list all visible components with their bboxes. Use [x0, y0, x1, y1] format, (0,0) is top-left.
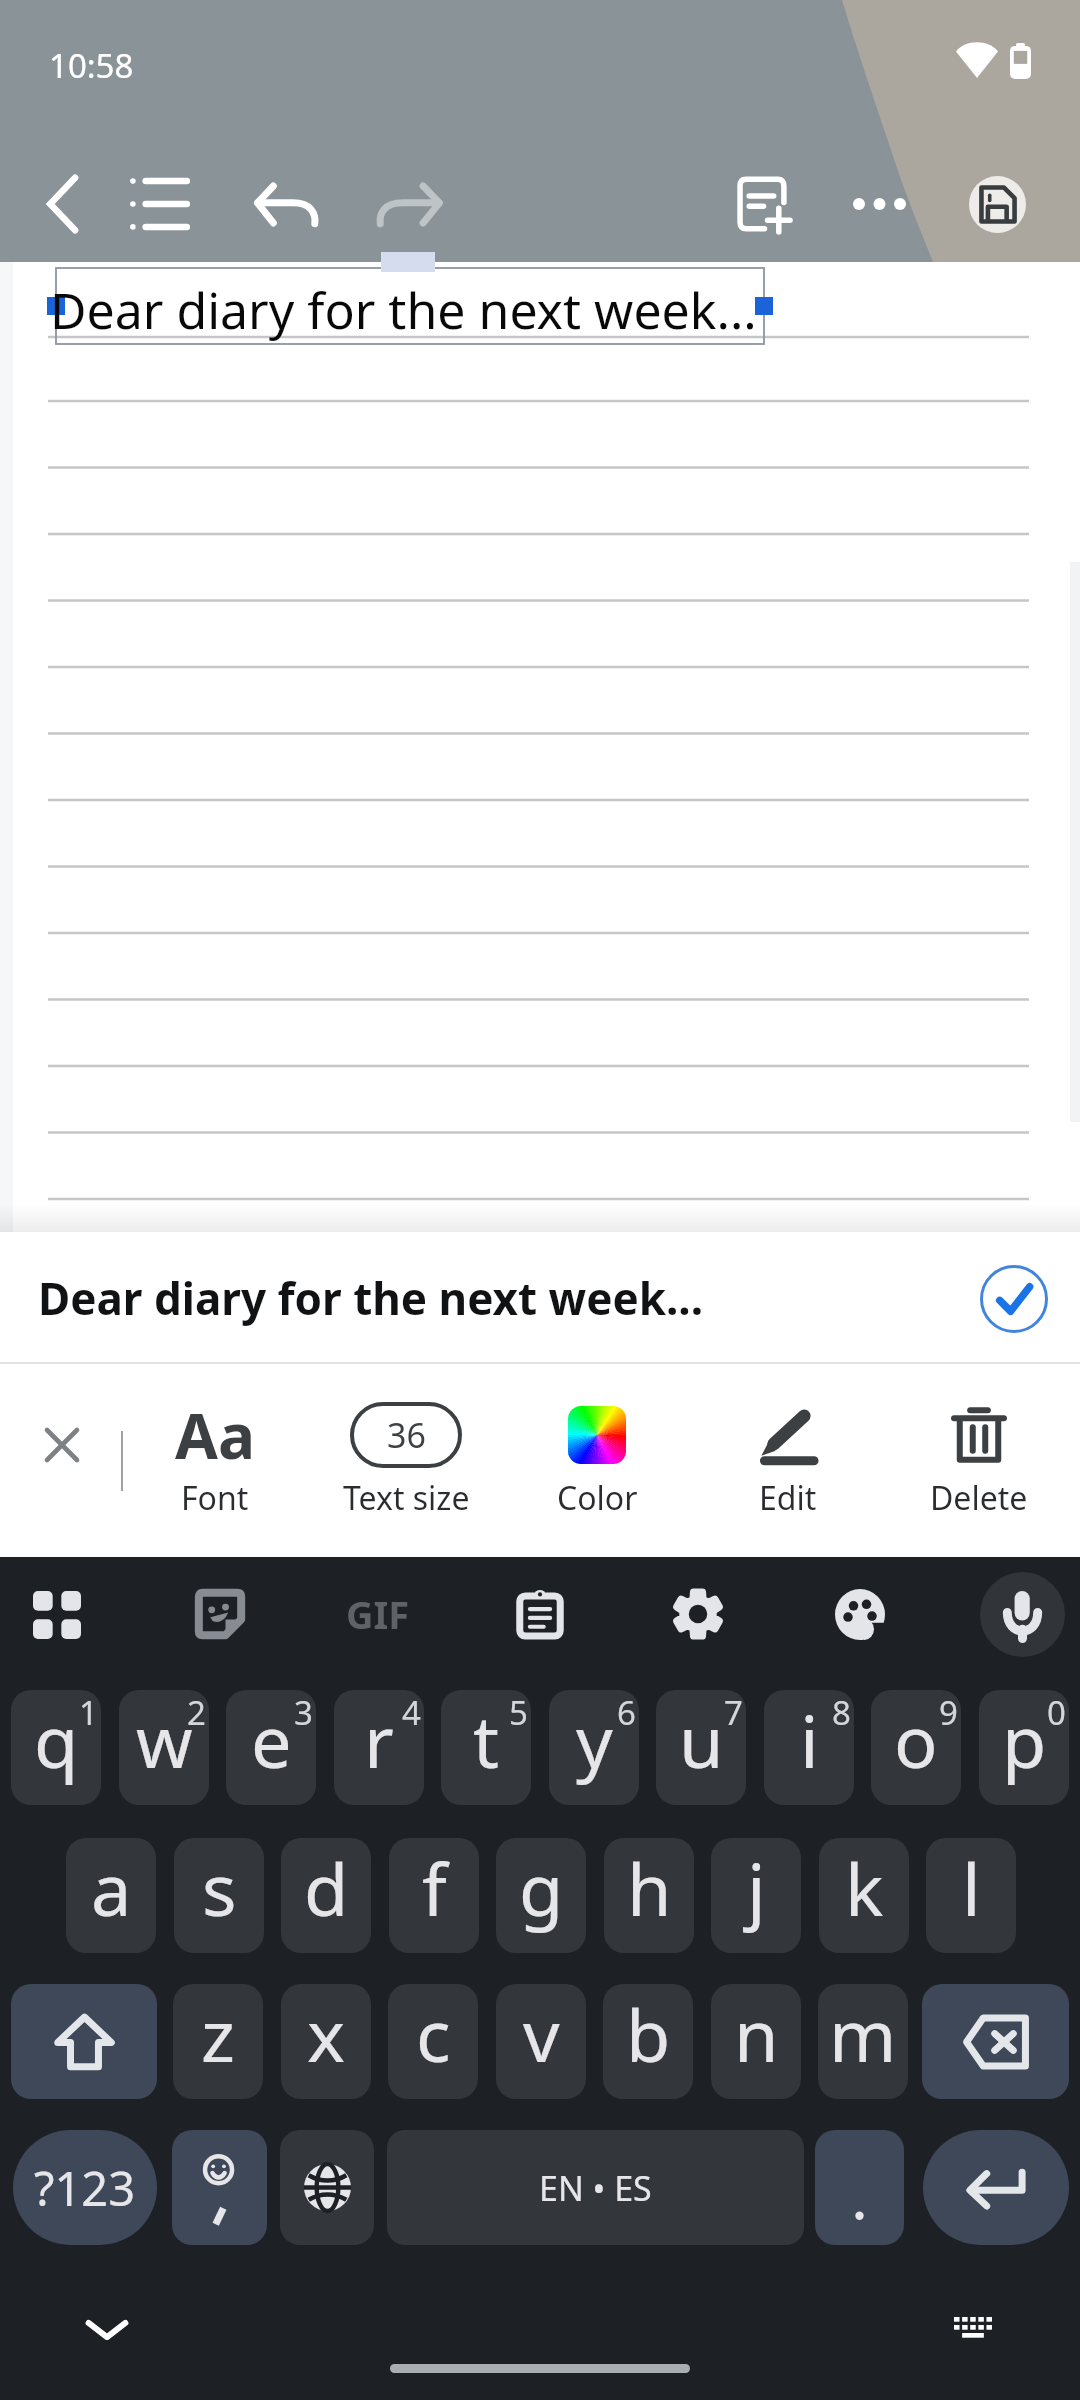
button[interactable]: 36	[324, 1364, 488, 1557]
button[interactable]: a	[66, 1838, 156, 1953]
staticText: k	[845, 1839, 884, 1937]
button[interactable]: d	[281, 1838, 371, 1953]
staticText: Text size	[343, 1476, 470, 1520]
button[interactable]: i	[764, 1690, 854, 1805]
button[interactable]: c	[388, 1984, 478, 2099]
button[interactable]: Backspace	[922, 1984, 1069, 2099]
staticText: n	[734, 1985, 779, 2083]
button[interactable]: r	[334, 1690, 424, 1805]
staticText: Dear diary for the next week...	[50, 276, 757, 344]
button[interactable]: Confirm	[972, 1257, 1056, 1341]
staticText: p	[1002, 1691, 1047, 1789]
button[interactable]: Edit	[706, 1364, 870, 1557]
staticText: 6	[617, 1690, 636, 1735]
button[interactable]: Color	[515, 1364, 679, 1557]
button[interactable]: f	[389, 1838, 479, 1953]
button[interactable]: y	[549, 1690, 639, 1805]
staticText: 1	[79, 1690, 98, 1735]
button[interactable]: n	[711, 1984, 801, 2099]
button[interactable]: k	[819, 1838, 909, 1953]
button[interactable]: Clipboard	[505, 1579, 575, 1649]
staticText: y	[576, 1691, 613, 1789]
staticText: 4	[402, 1690, 421, 1735]
button[interactable]: Redo	[363, 158, 457, 250]
button[interactable]: t	[441, 1690, 531, 1805]
staticText: u	[679, 1691, 724, 1789]
button[interactable]: Enter	[923, 2130, 1069, 2245]
staticText: o	[894, 1691, 938, 1789]
staticText: 5	[509, 1690, 528, 1735]
button[interactable]: Apps	[22, 1579, 92, 1649]
button[interactable]: Change language	[280, 2130, 374, 2245]
staticText: 0	[1047, 1690, 1066, 1735]
button[interactable]: Bullet list	[112, 158, 206, 250]
button[interactable]: l	[926, 1838, 1016, 1953]
button[interactable]: p	[979, 1690, 1069, 1805]
button[interactable]: Delete	[897, 1364, 1061, 1557]
button[interactable]: More options	[832, 158, 926, 250]
button[interactable]: q	[11, 1690, 101, 1805]
staticText: g	[519, 1839, 564, 1937]
staticText: s	[202, 1839, 237, 1937]
button[interactable]: e	[226, 1690, 316, 1805]
staticText: t	[473, 1691, 499, 1789]
staticText: a	[91, 1839, 132, 1937]
staticText: w	[136, 1691, 193, 1789]
staticText: h	[627, 1839, 672, 1937]
button[interactable]: EN • ES	[387, 2130, 804, 2245]
button[interactable]: Undo	[238, 158, 332, 250]
button[interactable]: Emoji	[172, 2130, 267, 2245]
staticText: 3	[294, 1690, 313, 1735]
button[interactable]: g	[496, 1838, 586, 1953]
button[interactable]: Themes	[825, 1579, 895, 1649]
staticText: l	[962, 1839, 981, 1937]
staticText: EN • ES	[539, 2165, 652, 2211]
staticText: m	[829, 1985, 897, 2083]
staticText: c	[416, 1985, 451, 2083]
button[interactable]: b	[603, 1984, 693, 2099]
staticText: q	[34, 1691, 79, 1789]
button[interactable]: w	[119, 1690, 209, 1805]
staticText: 7	[724, 1690, 743, 1735]
staticText: x	[307, 1985, 346, 2083]
button[interactable]: x	[281, 1984, 371, 2099]
staticText: Dear diary for the next week...	[38, 1268, 704, 1328]
button[interactable]: Voice input	[980, 1572, 1065, 1657]
button[interactable]: Settings	[663, 1579, 733, 1649]
button[interactable]: j	[711, 1838, 801, 1953]
staticText: Color	[557, 1476, 638, 1520]
button[interactable]: Stickers	[185, 1579, 255, 1649]
button[interactable]: o	[871, 1690, 961, 1805]
staticText: Edit	[759, 1476, 817, 1520]
staticText: Font	[181, 1476, 249, 1520]
button[interactable]: Back	[16, 158, 110, 250]
button[interactable]: s	[174, 1838, 264, 1953]
staticText: v	[523, 1985, 560, 2083]
button[interactable]: u	[656, 1690, 746, 1805]
staticText: i	[800, 1691, 819, 1789]
button[interactable]: v	[496, 1984, 586, 2099]
button[interactable]: Save	[969, 176, 1026, 233]
button[interactable]: z	[173, 1984, 263, 2099]
staticText: 9	[939, 1690, 958, 1735]
button[interactable]: Hide keyboard	[78, 2301, 136, 2359]
button[interactable]: ?123	[13, 2130, 157, 2245]
staticText: GIF	[346, 1588, 410, 1640]
button[interactable]: Close	[14, 1397, 109, 1492]
staticText: 2	[187, 1690, 206, 1735]
button[interactable]	[815, 2130, 904, 2245]
button[interactable]: h	[604, 1838, 694, 1953]
button[interactable]: New note	[716, 158, 810, 250]
button[interactable]: GIF	[343, 1579, 413, 1649]
staticText: 10:58	[49, 43, 134, 88]
button[interactable]: Aa	[133, 1364, 297, 1557]
staticText: Aa	[175, 1393, 256, 1477]
staticText: Delete	[930, 1476, 1028, 1520]
button[interactable]: Shift	[11, 1984, 157, 2099]
staticText: j	[747, 1839, 766, 1937]
staticText: b	[626, 1985, 671, 2083]
staticText: f	[422, 1839, 447, 1937]
button[interactable]: Switch keyboard	[935, 2300, 1011, 2354]
staticText: 8	[832, 1690, 851, 1735]
button[interactable]: m	[818, 1984, 908, 2099]
